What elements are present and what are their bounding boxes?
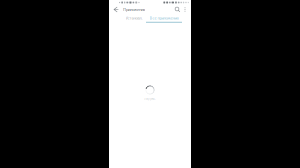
button[interactable]: Установл. <box>122 14 146 23</box>
staticText: Все приложения <box>149 15 178 20</box>
button[interactable]: Все приложения <box>146 14 182 23</box>
staticText: Установл. <box>125 15 142 20</box>
button[interactable]: Search <box>173 5 182 14</box>
button[interactable]: Back <box>111 5 121 14</box>
button[interactable]: More options <box>182 5 188 14</box>
staticText: Приложения <box>123 7 145 12</box>
staticText: Загрузка… <box>144 97 156 100</box>
